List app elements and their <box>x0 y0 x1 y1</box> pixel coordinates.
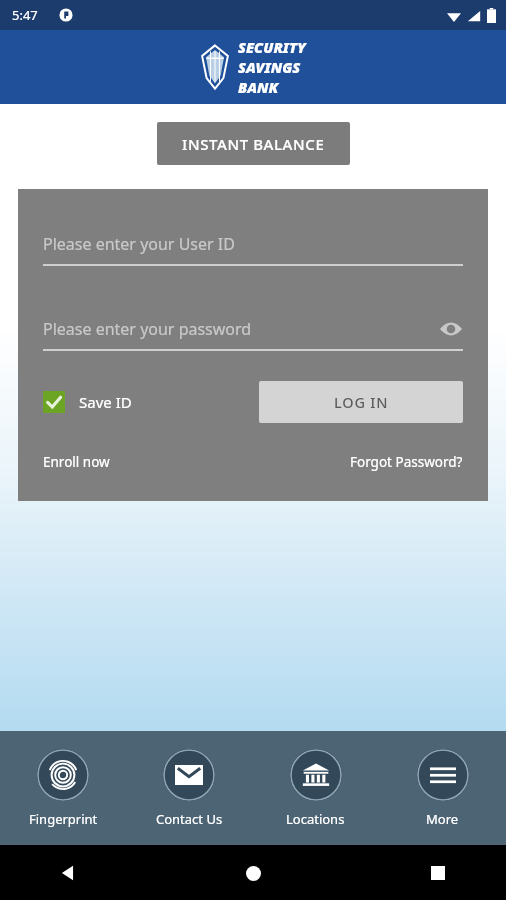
staticText: INSTANT BALANCE <box>182 134 325 154</box>
button[interactable]: Recents <box>414 849 462 897</box>
button[interactable]: Enroll now <box>43 453 110 471</box>
staticText: Forgot Password? <box>350 453 463 471</box>
button[interactable]: Fingerprint <box>0 743 126 834</box>
staticText: SECURITY <box>238 37 306 57</box>
other: Show password <box>439 321 463 337</box>
button[interactable]: LOG IN <box>259 381 463 423</box>
staticText: Please enter your password <box>43 318 252 340</box>
staticText: More <box>426 810 459 828</box>
button[interactable]: Locations <box>252 743 379 834</box>
button[interactable]: Save ID <box>43 391 132 413</box>
staticText: Please enter your User ID <box>43 233 235 255</box>
button[interactable]: Please enter your password <box>43 318 463 351</box>
button[interactable]: Home <box>229 849 277 897</box>
button[interactable]: More <box>379 743 506 834</box>
button[interactable]: Contact Us <box>126 743 252 834</box>
button[interactable]: Back <box>44 849 92 897</box>
button[interactable]: Please enter your User ID <box>43 233 463 266</box>
staticText: BANK <box>238 77 279 97</box>
button[interactable]: INSTANT BALANCE <box>157 122 350 165</box>
staticText: LOG IN <box>334 392 389 412</box>
staticText: Fingerprint <box>29 810 98 828</box>
staticText: Contact Us <box>156 810 223 828</box>
staticText: SAVINGS <box>238 57 301 77</box>
staticText: Locations <box>286 810 345 828</box>
staticText: Enroll now <box>43 453 110 471</box>
staticText: Save ID <box>79 392 132 412</box>
button[interactable]: Forgot Password? <box>350 453 463 471</box>
staticText: 5:47 <box>12 6 38 24</box>
